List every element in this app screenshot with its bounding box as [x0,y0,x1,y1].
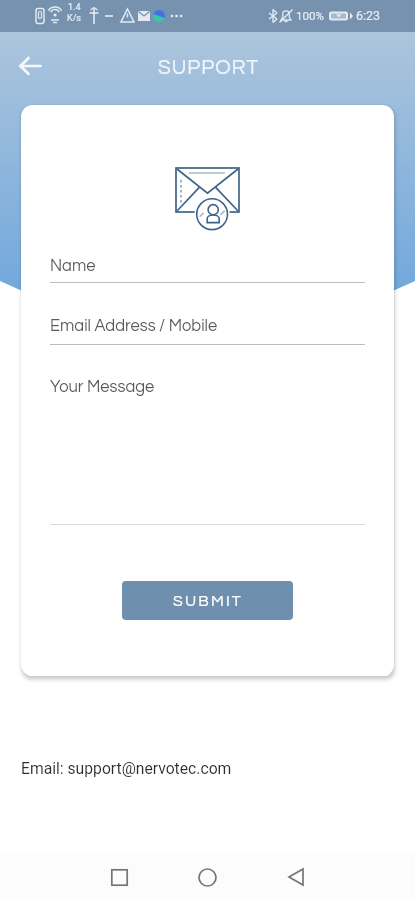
staticText: SUBMIT [173,593,243,609]
button[interactable]: SUBMIT [122,581,293,620]
button[interactable]: Recent apps [95,853,144,900]
staticText: K/s [67,13,82,24]
button[interactable]: Back [9,47,51,89]
staticText: 1.4 [68,2,81,13]
staticText: Your Message [50,378,155,395]
button[interactable]: Home [183,853,232,900]
staticText: 100% [296,9,324,22]
staticText: 6:23 [356,8,381,23]
staticText: SUPPORT [158,57,260,78]
staticText: Email: support@nervotec.com [21,759,232,777]
staticText: Email Address / Mobile [50,317,218,334]
staticText: Name [50,257,96,274]
button[interactable]: Back [271,853,320,900]
